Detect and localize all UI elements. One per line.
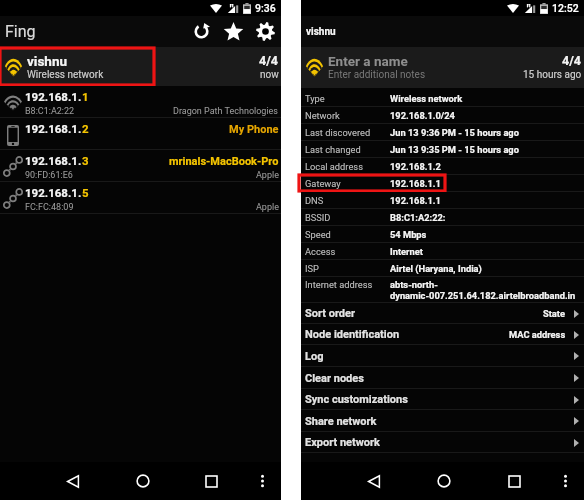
button[interactable]: Log (301, 345, 584, 367)
staticText: ISP (305, 263, 319, 274)
staticText: abts-north- (390, 279, 438, 290)
staticText: Last discovered (305, 127, 371, 138)
button[interactable]: Home (409, 462, 479, 500)
staticText: 192.168.1. (25, 154, 82, 167)
staticText: 4/4 (259, 53, 279, 68)
staticText: Apple (256, 202, 279, 213)
staticText: Wireless network (390, 93, 463, 104)
staticText: Enter additional notes (328, 69, 426, 81)
button[interactable]: 192.168.1. (0, 182, 281, 214)
staticText: 15 hours ago (523, 69, 582, 81)
button[interactable]: ISP (301, 260, 584, 277)
staticText: 9:36 (255, 2, 276, 14)
staticText: Local address (305, 161, 363, 172)
staticText: My Phone (229, 123, 279, 136)
staticText: 90:FD:61:E6 (25, 170, 73, 181)
button[interactable]: Network (301, 107, 584, 124)
staticText: Internet address (305, 279, 373, 290)
button[interactable]: Recent apps (479, 462, 549, 500)
button[interactable]: Access (301, 243, 584, 260)
staticText: Fing (5, 22, 36, 41)
staticText: 3 (82, 154, 89, 167)
staticText: Clear nodes (305, 372, 364, 385)
button[interactable]: Internet address (301, 277, 584, 303)
staticText: 192.168.1. (25, 122, 82, 135)
button[interactable]: Enter a name (301, 47, 584, 88)
button[interactable]: Sync customizations (301, 389, 584, 410)
staticText: MAC address (509, 329, 566, 340)
button[interactable]: Export network (301, 432, 584, 453)
button[interactable]: Clear nodes (301, 367, 584, 389)
staticText: Access (305, 246, 336, 257)
staticText: 192.168.1.2 (390, 161, 441, 172)
staticText: Internet (390, 246, 423, 257)
staticText: B8:C1:A2:22 (25, 106, 75, 117)
button[interactable]: Node identification (301, 324, 584, 345)
button[interactable]: Gateway (301, 175, 584, 192)
button[interactable]: Last changed (301, 141, 584, 158)
staticText: Sort order (305, 307, 356, 320)
staticText: Enter a name (328, 53, 408, 69)
staticText: 54 Mbps (390, 229, 427, 240)
staticText: Apple (256, 170, 279, 181)
staticText: Network (305, 110, 340, 121)
staticText: Node identification (305, 328, 400, 341)
button[interactable]: Refresh (186, 16, 217, 47)
staticText: Dragon Path Technologies (173, 106, 279, 117)
staticText: Jun 13 9:35 PM - 15 hours ago (390, 144, 519, 155)
staticText: Airtel (Haryana, India) (390, 263, 482, 274)
staticText: 2 (82, 122, 89, 135)
staticText: DNS (305, 195, 324, 206)
staticText: 5 (82, 186, 89, 199)
staticText: Last changed (305, 144, 361, 155)
button[interactable]: More options (246, 462, 278, 500)
button[interactable]: vishnu (0, 47, 281, 86)
staticText: 192.168.1.1 (390, 178, 441, 189)
button[interactable]: 192.168.1. (0, 118, 281, 150)
button[interactable]: Back (339, 462, 409, 500)
staticText: vishnu (306, 26, 336, 38)
button[interactable]: Last discovered (301, 124, 584, 141)
staticText: FC:FC:48:09 (25, 202, 74, 213)
staticText: Speed (305, 229, 331, 240)
button[interactable]: Local address (301, 158, 584, 175)
staticText: Log (305, 350, 324, 363)
button[interactable]: Sort order (301, 303, 584, 324)
button[interactable]: DNS (301, 192, 584, 209)
staticText: 192.168.1.0/24 (390, 110, 455, 121)
staticText: dynamic-007.251.64.182.airtelbroadband.i… (390, 290, 576, 301)
staticText: Share network (305, 415, 377, 428)
button[interactable]: Type (301, 90, 584, 107)
staticText: 12:52 (552, 2, 579, 14)
staticText: now (260, 69, 279, 81)
button[interactable]: Share network (301, 410, 584, 432)
button[interactable]: 192.168.1. (0, 86, 281, 118)
staticText: Wireless network (27, 69, 104, 81)
button[interactable]: Back (38, 462, 108, 500)
staticText: vishnu (27, 53, 68, 69)
staticText: Export network (305, 436, 380, 449)
staticText: B8:C1:A2:22: (390, 212, 446, 223)
staticText: Gateway (305, 178, 341, 189)
button[interactable]: Favorites (217, 16, 250, 47)
staticText: Type (305, 93, 325, 104)
button[interactable]: Settings (250, 16, 281, 47)
staticText: 1 (82, 90, 89, 103)
staticText: State (543, 308, 566, 319)
staticText: BSSID (305, 212, 331, 223)
button[interactable]: 192.168.1. (0, 150, 281, 182)
button[interactable]: Recent apps (177, 462, 246, 500)
button[interactable]: BSSID (301, 209, 584, 226)
staticText: 192.168.1. (25, 186, 82, 199)
staticText: mrinals-MacBook-Pro (169, 155, 279, 168)
staticText: Jun 13 9:36 PM - 15 hours ago (390, 127, 519, 138)
staticText: Sync customizations (305, 393, 408, 406)
staticText: 4/4 (562, 53, 582, 68)
button[interactable]: More options (549, 462, 581, 500)
staticText: 192.168.1. (25, 90, 82, 103)
staticText: 192.168.1.1 (390, 195, 441, 206)
button[interactable]: Speed (301, 226, 584, 243)
button[interactable]: Home (108, 462, 177, 500)
